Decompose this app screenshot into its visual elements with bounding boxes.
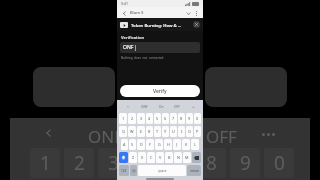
staticText: L — [194, 142, 196, 147]
staticText: H — [167, 142, 170, 147]
staticText: 0 — [274, 150, 285, 176]
button[interactable]: 8 — [178, 113, 185, 124]
button[interactable]: C — [147, 152, 155, 163]
staticText: 3 — [108, 150, 119, 176]
button[interactable]: I — [178, 126, 185, 137]
staticText: B — [168, 155, 171, 160]
staticText: J — [176, 142, 178, 147]
staticText: 2 — [131, 116, 134, 121]
button[interactable]: 123 — [119, 165, 129, 176]
button[interactable]: Shift — [119, 152, 128, 163]
button[interactable]: On — [153, 103, 169, 111]
staticText: I — [181, 129, 183, 134]
button[interactable]: More options — [192, 9, 200, 17]
button[interactable]: Emoji — [130, 165, 137, 176]
staticText: 9 — [240, 150, 251, 176]
button[interactable]: O — [186, 126, 193, 137]
staticText: 2 — [74, 150, 85, 176]
staticText: R — [148, 129, 151, 134]
button[interactable]: F — [146, 139, 154, 150]
button[interactable]: Expand — [184, 9, 192, 17]
staticText: 3 — [140, 116, 143, 121]
staticText: Y — [164, 129, 167, 134]
button[interactable]: 5 — [154, 113, 161, 124]
button[interactable]: A — [121, 139, 128, 150]
staticText: P — [196, 129, 199, 134]
staticText: C — [150, 155, 153, 160]
button[interactable]: U — [170, 126, 177, 137]
button[interactable]: E — [137, 126, 145, 137]
button[interactable]: 4 — [146, 113, 153, 124]
staticText: 8 — [206, 150, 217, 176]
button[interactable]: K — [182, 139, 190, 150]
staticText: T — [156, 129, 159, 134]
button[interactable]: ONF — [120, 42, 200, 53]
staticText: ONF — [123, 44, 134, 51]
staticText: U — [172, 129, 175, 134]
staticText: 8 — [180, 116, 183, 121]
button[interactable]: P — [194, 126, 201, 137]
button[interactable]: 3 — [137, 113, 145, 124]
staticText: Verify — [153, 88, 167, 95]
button[interactable]: 1 — [119, 113, 127, 124]
staticText: F — [149, 142, 151, 147]
staticText: G — [158, 142, 161, 147]
button[interactable]: Z — [129, 152, 137, 163]
staticText: Z — [132, 155, 135, 160]
button[interactable]: S — [129, 139, 136, 150]
button[interactable]: return — [187, 165, 201, 176]
button[interactable]: Delete — [192, 152, 201, 163]
button[interactable]: T — [154, 126, 161, 137]
button[interactable]: ONF — [136, 103, 153, 111]
staticText: 1 — [40, 150, 51, 176]
staticText: space — [158, 169, 167, 173]
staticText: Verification — [121, 35, 145, 40]
staticText: OFF — [206, 125, 237, 148]
button[interactable]: N — [174, 152, 182, 163]
staticText: N — [177, 155, 180, 160]
button[interactable]: OFF — [169, 103, 185, 111]
button[interactable]: Y — [162, 126, 169, 137]
button[interactable]: < — [119, 103, 136, 111]
button[interactable]: H — [164, 139, 172, 150]
staticText: 9:41 — [121, 1, 128, 6]
button[interactable]: V — [156, 152, 164, 163]
staticText: O — [188, 129, 191, 134]
button[interactable]: L — [191, 139, 199, 150]
staticText: return — [190, 169, 199, 173]
button[interactable]: Verify — [120, 85, 200, 97]
staticText: 123 — [121, 169, 127, 173]
button[interactable]: Q — [119, 126, 127, 137]
staticText: On — [159, 105, 164, 109]
button[interactable]: D — [137, 139, 145, 150]
button[interactable]: J — [173, 139, 181, 150]
button[interactable]: 0 — [194, 113, 201, 124]
button[interactable]: B — [165, 152, 173, 163]
button[interactable]: Token Burning: How & … — [120, 18, 200, 31]
button[interactable]: space — [138, 165, 186, 176]
staticText: Q — [122, 129, 125, 134]
staticText: 7 — [172, 116, 175, 121]
staticText: 4 — [148, 116, 151, 121]
staticText: K — [185, 142, 188, 147]
staticText: E — [140, 129, 143, 134]
button[interactable]: X — [138, 152, 146, 163]
button[interactable]: 7 — [170, 113, 177, 124]
staticText: 9 — [188, 116, 191, 121]
staticText: Blum $ — [130, 10, 144, 15]
button[interactable]: R — [146, 126, 153, 137]
staticText: S — [131, 142, 134, 147]
button[interactable]: 2 — [128, 113, 136, 124]
staticText: D — [140, 142, 143, 147]
button[interactable]: → — [185, 103, 201, 111]
button[interactable]: Back — [120, 9, 128, 17]
button[interactable]: W — [128, 126, 136, 137]
button[interactable]: G — [155, 139, 163, 150]
button[interactable]: Close — [193, 21, 200, 28]
button[interactable]: 6 — [162, 113, 169, 124]
staticText: 6 — [164, 116, 167, 121]
staticText: A — [123, 142, 126, 147]
button[interactable]: M — [183, 152, 191, 163]
button[interactable]: 9 — [186, 113, 193, 124]
staticText: Token Burning: How & … — [131, 22, 193, 28]
